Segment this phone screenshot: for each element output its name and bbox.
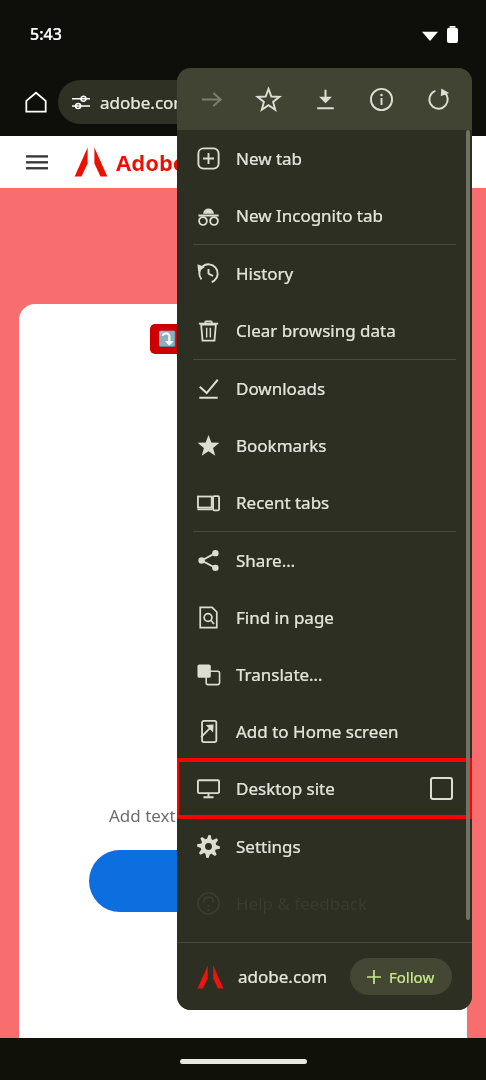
staticText: Find in page: [236, 606, 334, 629]
button[interactable]: Follow: [350, 958, 452, 995]
button[interactable]: Download: [302, 76, 348, 122]
staticText: Share…: [236, 549, 296, 572]
staticText: Add text: [109, 804, 176, 827]
staticText: Translate…: [236, 663, 323, 686]
button[interactable]: Desktop site: [177, 760, 472, 817]
button[interactable]: Find in page: [177, 589, 472, 646]
staticText: Settings: [236, 835, 301, 858]
staticText: New Incognito tab: [236, 204, 383, 227]
staticText: 5:43: [30, 23, 62, 45]
staticText: Downloads: [236, 377, 326, 400]
button[interactable]: Share…: [177, 532, 472, 589]
button[interactable]: Help & feedback: [177, 875, 472, 932]
staticText: Adobe: [116, 147, 186, 177]
staticText: Desktop site: [236, 777, 335, 800]
staticText: Help & feedback: [236, 892, 368, 915]
button[interactable]: New Incognito tab: [177, 187, 472, 244]
staticText: New tab: [236, 147, 303, 170]
button[interactable]: Bookmark: [245, 76, 291, 122]
button[interactable]: Forward: [188, 76, 234, 122]
staticText: adobe.com: [100, 91, 190, 114]
button[interactable]: Recent tabs: [177, 474, 472, 531]
staticText: Clear browsing data: [236, 319, 396, 342]
staticText: History: [236, 262, 294, 285]
button[interactable]: New tab: [177, 130, 472, 187]
button[interactable]: Home: [16, 82, 56, 122]
button[interactable]: Add to Home screen: [177, 703, 472, 760]
button[interactable]: Reload: [415, 76, 461, 122]
button[interactable]: Clear browsing data: [177, 302, 472, 359]
button[interactable]: Page info: [358, 76, 404, 122]
button[interactable]: Bookmarks: [177, 417, 472, 474]
staticText: Recent tabs: [236, 491, 330, 514]
staticText: Add to Home screen: [236, 720, 399, 743]
button[interactable]: adobe.com: [58, 80, 288, 124]
button[interactable]: Downloads: [177, 360, 472, 417]
staticText: Bookmarks: [236, 434, 327, 457]
staticText: ⤵: [158, 330, 177, 348]
button[interactable]: Settings: [177, 818, 472, 875]
staticText: Follow: [389, 967, 435, 987]
button[interactable]: History: [177, 245, 472, 302]
staticText: adobe.com: [238, 965, 328, 988]
button[interactable]: [89, 850, 309, 912]
button[interactable]: Translate…: [177, 646, 472, 703]
